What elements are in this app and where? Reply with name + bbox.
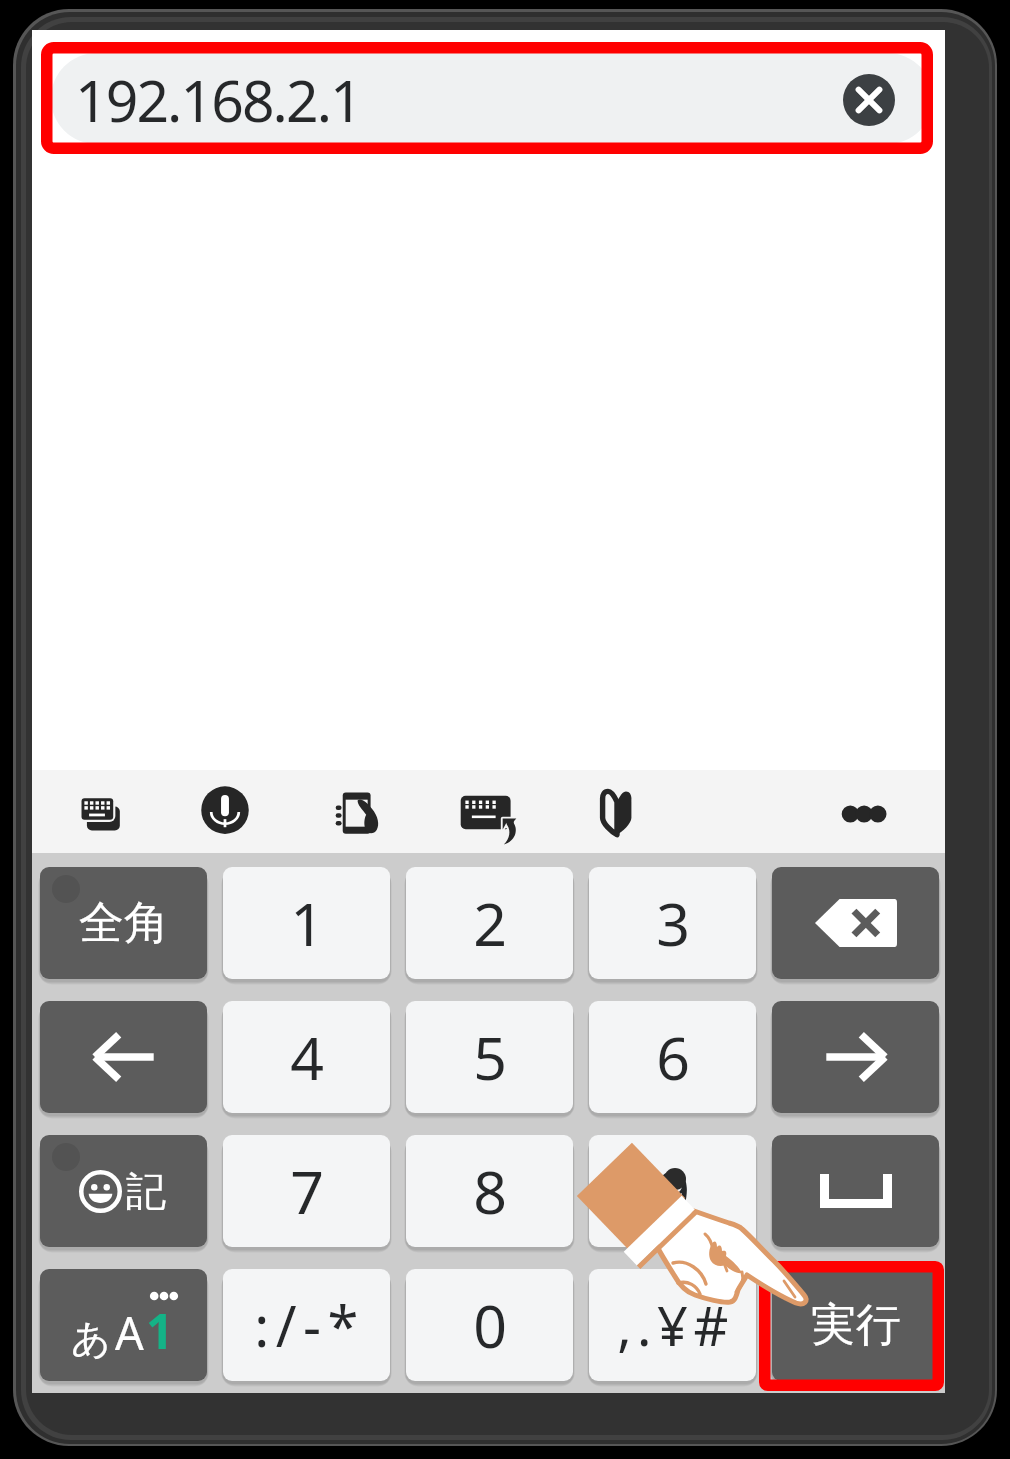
staticText: 2 (473, 883, 507, 963)
button[interactable]: 3 (589, 867, 756, 979)
staticText: 0 (473, 1285, 507, 1365)
button[interactable]: Switch input mode (40, 1269, 207, 1381)
button[interactable]: Space (772, 1135, 939, 1247)
button[interactable]: 192.168.2.1 (51, 53, 933, 144)
button[interactable]: Handwriting input (323, 777, 395, 849)
staticText: 1 (146, 1298, 174, 1363)
staticText: 6 (656, 1017, 690, 1097)
staticText: ,.¥# (617, 1288, 734, 1362)
staticText: 記 (126, 1166, 166, 1216)
button[interactable]: :/-* (223, 1269, 390, 1381)
button[interactable]: Move cursor left (40, 1001, 207, 1113)
button[interactable]: 8 (406, 1135, 573, 1247)
staticText: 3 (656, 883, 690, 963)
button[interactable]: Switch keyboard (61, 777, 133, 849)
button[interactable]: 全角 (40, 867, 207, 979)
staticText: A (115, 1302, 144, 1363)
button[interactable]: 4 (223, 1001, 390, 1113)
staticText: 実行 (811, 1297, 901, 1354)
button[interactable]: 1 (223, 867, 390, 979)
button[interactable]: Keyboard undo (453, 777, 525, 849)
staticText: 1 (290, 883, 324, 963)
button[interactable]: 0 (406, 1269, 573, 1381)
button[interactable]: 9 (589, 1135, 756, 1247)
staticText: 4 (290, 1017, 324, 1097)
button[interactable]: Beginner mark (581, 777, 653, 849)
button[interactable]: 7 (223, 1135, 390, 1247)
button[interactable]: More options (828, 777, 900, 849)
staticText: 5 (473, 1017, 507, 1097)
button[interactable]: 実行 (772, 1269, 939, 1381)
staticText: 7 (290, 1151, 324, 1231)
button[interactable]: 5 (406, 1001, 573, 1113)
button[interactable]: Voice input (189, 777, 261, 849)
staticText: 9 (656, 1151, 690, 1231)
staticText: 全角 (79, 895, 169, 952)
staticText: 192.168.2.1 (75, 61, 361, 139)
button[interactable]: Backspace (772, 867, 939, 979)
button[interactable]: 2 (406, 867, 573, 979)
button[interactable]: ,.¥# (589, 1269, 756, 1381)
button[interactable]: 6 (589, 1001, 756, 1113)
button[interactable]: Clear text (843, 74, 895, 126)
staticText: 8 (473, 1151, 507, 1231)
staticText: :/-* (254, 1287, 365, 1363)
button[interactable]: Move cursor right (772, 1001, 939, 1113)
staticText: あ (71, 1314, 111, 1363)
button[interactable]: Emoji and symbols (40, 1135, 207, 1247)
